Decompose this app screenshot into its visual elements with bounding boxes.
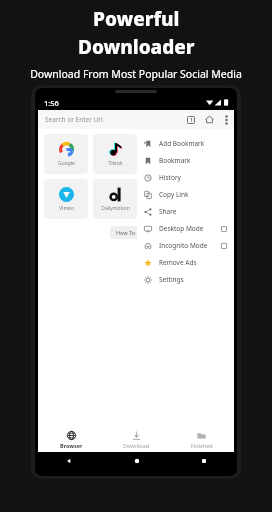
button[interactable]: Google — [44, 134, 88, 174]
staticText: Share — [159, 207, 177, 216]
button[interactable]: Copy Link — [137, 186, 234, 203]
button[interactable]: Add Bookmark — [137, 135, 234, 152]
staticText: Powerful — [93, 6, 180, 32]
staticText: Remove Ads — [159, 258, 197, 267]
button[interactable]: Incognito Mode — [137, 237, 234, 254]
button[interactable]: Desktop Mode — [137, 220, 234, 237]
staticText: Incognito Mode — [159, 241, 208, 250]
staticText: Downloader — [78, 34, 195, 60]
staticText: 1 — [190, 117, 193, 124]
staticText: Tiktok — [108, 160, 123, 167]
button[interactable]: History — [137, 169, 234, 186]
button[interactable]: Download — [104, 428, 169, 452]
staticText: Download From Most Popular Social Media — [30, 67, 242, 81]
staticText: Bookmark — [159, 156, 191, 165]
staticText: History — [159, 173, 181, 182]
staticText: Google — [58, 160, 75, 167]
button[interactable]: Home — [103, 452, 170, 470]
button[interactable]: Back — [35, 452, 103, 470]
button[interactable]: Share — [137, 203, 234, 220]
button[interactable]: Tabs — [181, 110, 200, 129]
button[interactable]: Browser — [38, 428, 104, 452]
staticText: Copy Link — [159, 190, 189, 199]
button[interactable]: Settings — [137, 271, 234, 288]
staticText: Search or Enter Url — [45, 115, 103, 124]
button[interactable]: Bookmark — [137, 152, 234, 169]
button[interactable]: Remove Ads — [137, 254, 234, 271]
staticText: Add Bookmark — [159, 139, 205, 148]
staticText: Vimeo — [59, 205, 74, 212]
button[interactable]: Recent apps — [170, 452, 237, 470]
button[interactable]: Dailymotion — [93, 179, 137, 219]
button[interactable]: Vimeo — [44, 179, 88, 219]
staticText: Finished — [191, 442, 213, 449]
button[interactable]: Home — [200, 110, 219, 129]
staticText: How To Do — [116, 229, 144, 236]
button[interactable]: Tiktok — [93, 134, 137, 174]
staticText: Download — [123, 442, 150, 449]
staticText: Browser — [60, 442, 83, 449]
staticText: 1:56 — [44, 98, 59, 108]
staticText: Desktop Mode — [159, 224, 204, 233]
button[interactable]: Finished — [169, 428, 234, 452]
button[interactable]: More options — [219, 112, 234, 127]
button[interactable]: Search or Enter Url — [38, 110, 181, 129]
staticText: Settings — [159, 275, 184, 284]
button[interactable]: How To Do — [110, 226, 150, 239]
staticText: Dailymotion — [101, 205, 130, 212]
